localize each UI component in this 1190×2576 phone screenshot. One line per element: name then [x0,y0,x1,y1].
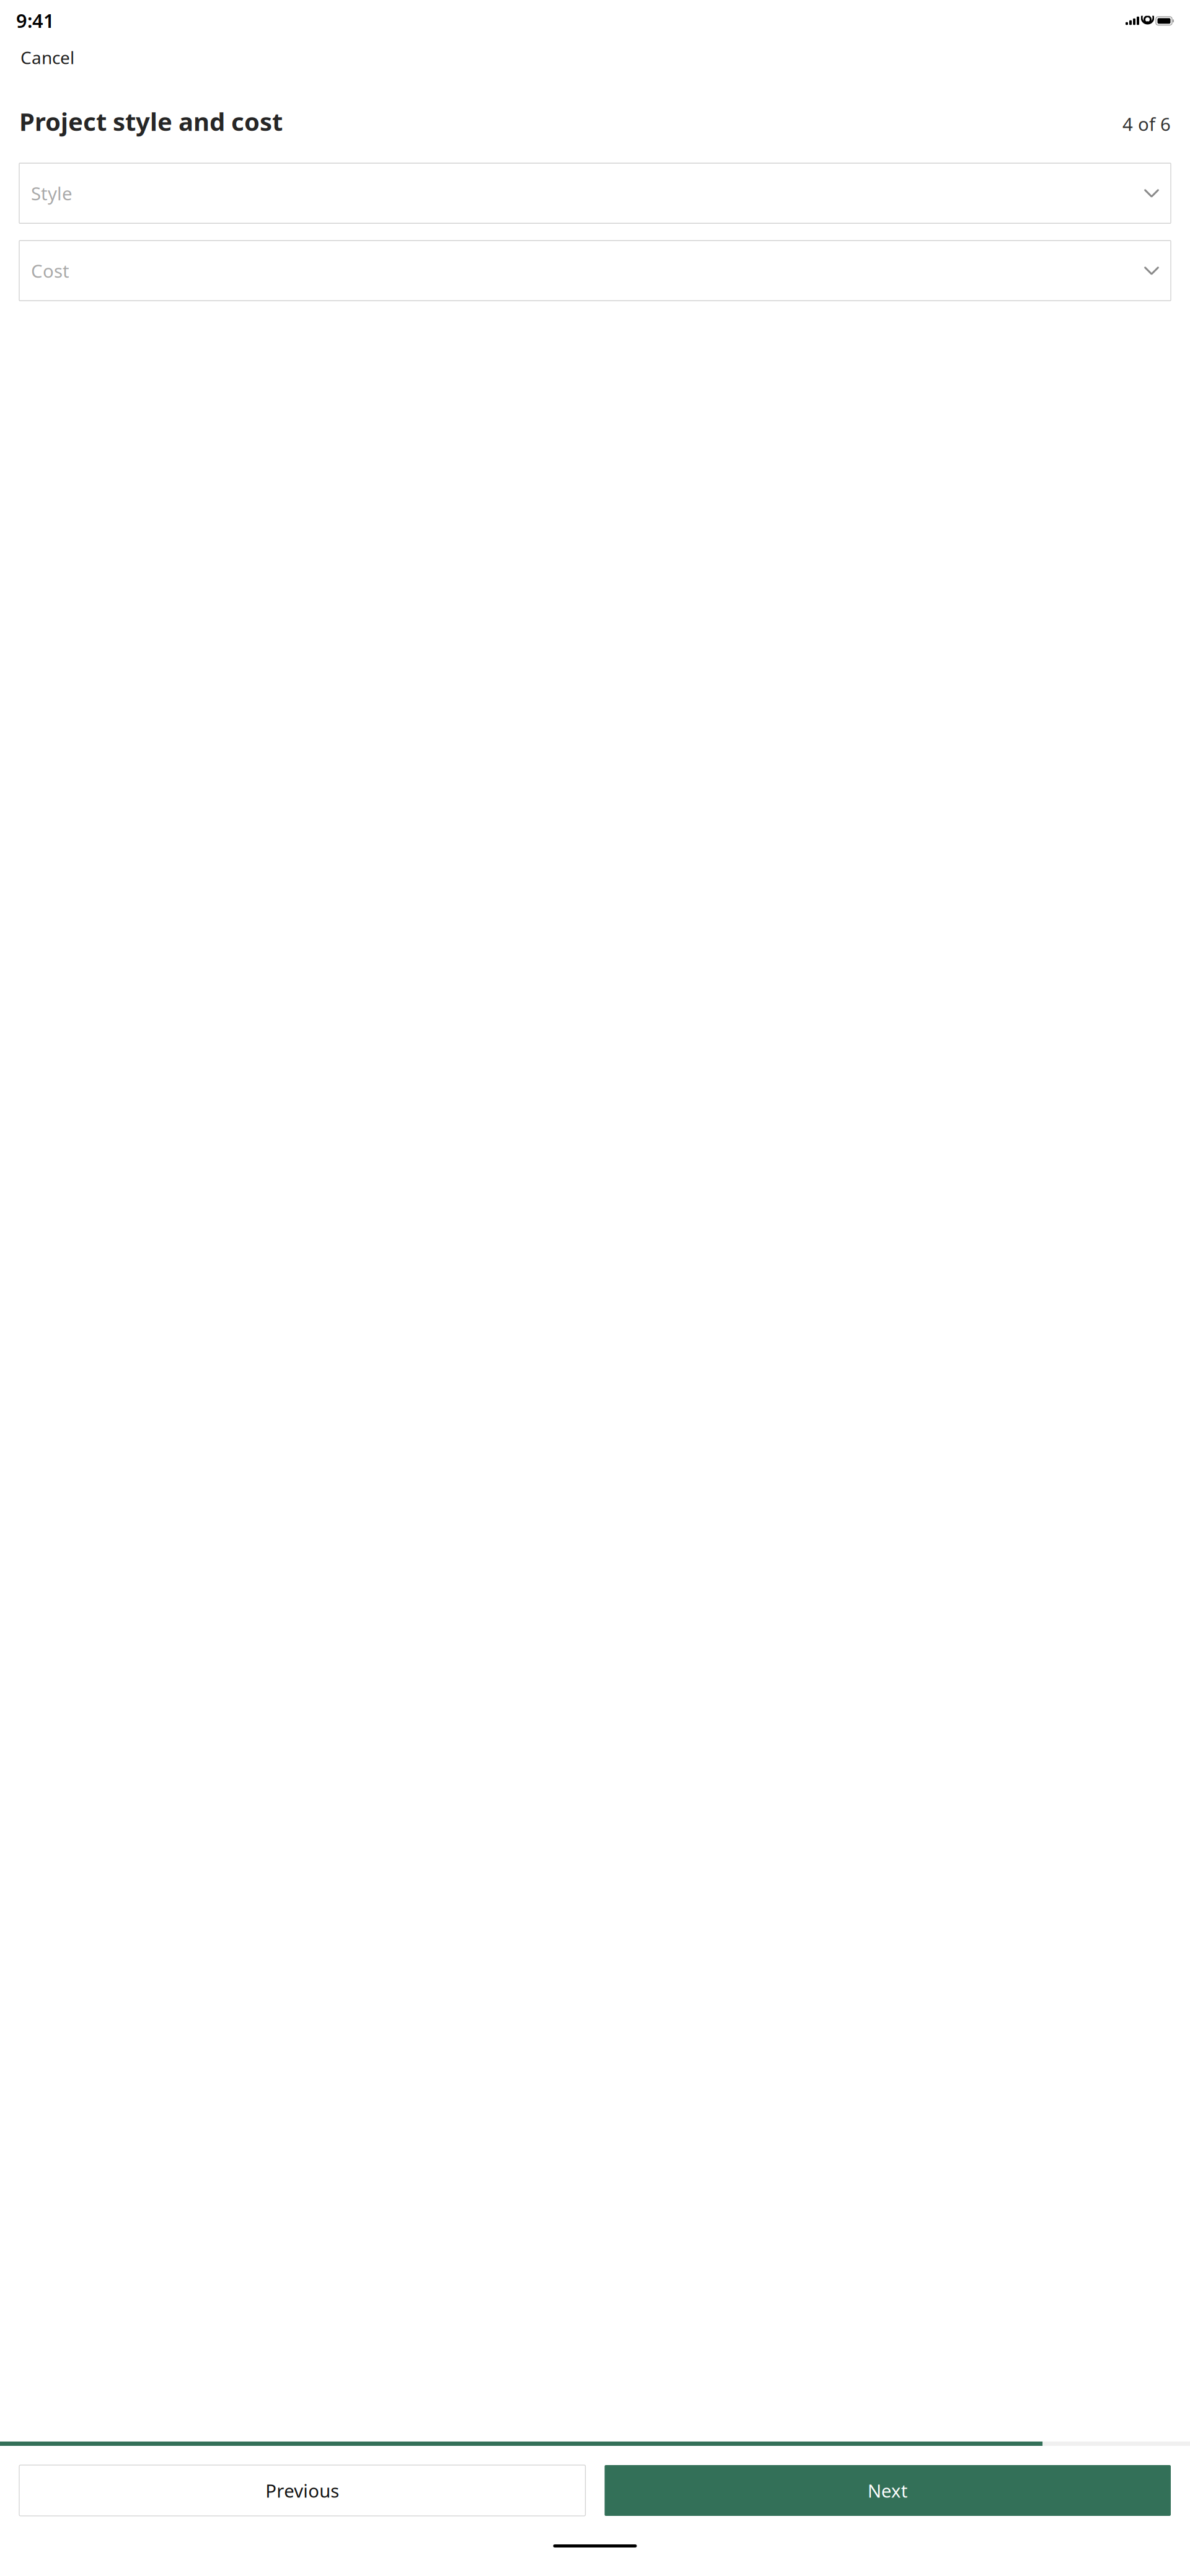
button[interactable]: Style [19,163,1171,223]
staticText: Cancel [20,46,74,69]
button[interactable]: Cost [19,241,1171,301]
button[interactable]: Next [605,2465,1171,2516]
button[interactable]: Cancel [18,40,77,75]
staticText: Previous [265,2478,339,2503]
button[interactable]: Previous [19,2465,585,2516]
staticText: Style [31,181,73,205]
staticText: Next [868,2478,908,2503]
staticText: 9:41 [16,8,55,33]
staticText: 4 of 6 [1122,112,1171,136]
staticText: Cost [31,259,69,283]
staticText: Project style and cost [19,105,283,138]
